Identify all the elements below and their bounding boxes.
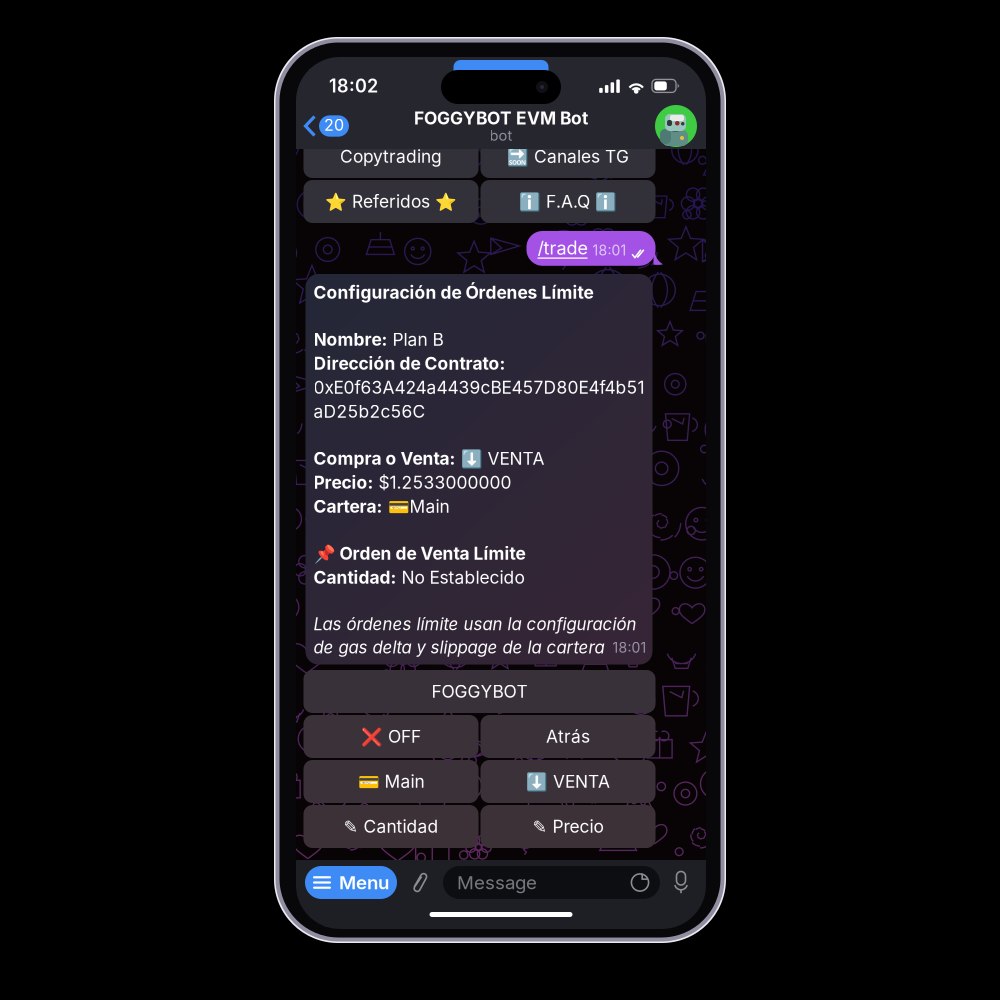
staticText: Menu (339, 871, 389, 894)
staticText: ✎ Precio (532, 816, 603, 837)
button[interactable]: FOGGYBOT (303, 670, 655, 713)
staticText: ℹ️ F.A.Q ℹ️ (519, 191, 617, 212)
button[interactable]: Bot profile (655, 105, 706, 147)
button[interactable]: ✎ Cantidad (303, 805, 478, 848)
button[interactable]: ⭐ Referidos ⭐ (303, 180, 478, 223)
staticText: 18:02 (329, 75, 378, 97)
staticText: ❌ OFF (361, 726, 421, 747)
staticText: Plan B (387, 329, 443, 350)
staticText: aD25b2c56C (313, 401, 425, 422)
staticText: 📌 Orden de Venta Límite (313, 543, 525, 564)
staticText: Las órdenes límite usan la configuración (313, 614, 636, 634)
staticText: Compra o Venta: (313, 448, 455, 469)
button[interactable]: ⬇️ VENTA (480, 760, 655, 803)
staticText: ⭐ Referidos ⭐ (325, 191, 457, 212)
button[interactable]: 💳 Main (303, 760, 478, 803)
staticText: FOGGYBOT EVM Bot (414, 108, 588, 129)
staticText: Cantidad: (313, 567, 396, 588)
staticText: ⬇️ VENTA (455, 448, 544, 469)
button[interactable]: Record voice message (660, 866, 702, 899)
staticText: Nombre: (313, 329, 387, 350)
staticText: 18:01 (592, 242, 626, 259)
staticText: Message (457, 871, 537, 894)
staticText: $1.2533000000 (373, 472, 511, 493)
staticText: bot (489, 127, 512, 144)
staticText: ⬇️ VENTA (526, 771, 610, 792)
staticText: No Establecido (396, 567, 524, 588)
staticText: 🔜 Canales TG (507, 146, 629, 167)
staticText: 💳 Main (357, 771, 424, 792)
button[interactable]: 🔜 Canales TG (480, 135, 655, 178)
staticText: Configuración de Órdenes Límite (313, 282, 593, 303)
button[interactable]: ✎ Precio (480, 805, 655, 848)
staticText: Cartera: (313, 496, 382, 517)
staticText: Dirección de Contrato: (313, 353, 505, 374)
button[interactable]: ❌ OFF (303, 715, 478, 758)
staticText: ✎ Cantidad (343, 816, 438, 837)
button[interactable]: Message (443, 866, 660, 899)
staticText: 💳Main (382, 496, 449, 517)
staticText: de gas delta y slippage de la cartera (313, 637, 604, 657)
staticText: Precio: (313, 472, 373, 493)
button[interactable]: ℹ️ F.A.Q ℹ️ (480, 180, 655, 223)
button[interactable]: 20 (296, 103, 359, 149)
staticText: 20 (324, 115, 344, 135)
button[interactable]: Menu (305, 866, 397, 899)
staticText: Atrás (546, 726, 590, 747)
button[interactable]: Atrás (480, 715, 655, 758)
staticText: FOGGYBOT (431, 681, 527, 702)
staticText: 18:01 (612, 639, 646, 656)
staticText: /trade (537, 237, 587, 259)
button[interactable]: Attach file (397, 866, 443, 899)
button[interactable]: Copytrading (303, 135, 478, 178)
staticText: Copytrading (340, 146, 442, 167)
staticText: 0xE0f63A424a4439cBE457D80E4f4b51 (313, 377, 644, 398)
